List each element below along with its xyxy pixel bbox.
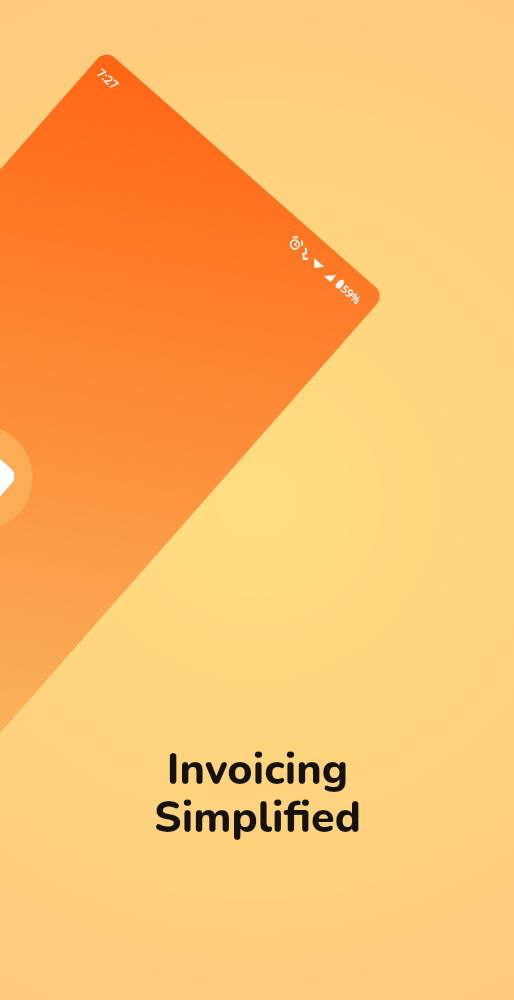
staticText: 59% [338, 281, 364, 307]
staticText: Invoicing Simplified [154, 741, 361, 847]
staticText: 7:27 [94, 64, 122, 92]
button[interactable]: Add invoice [0, 403, 54, 553]
